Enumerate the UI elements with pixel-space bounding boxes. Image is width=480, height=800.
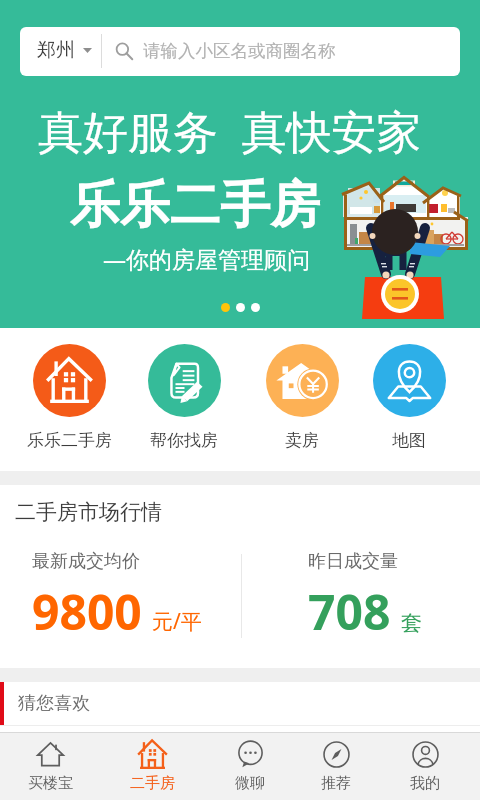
staticText: 二手房市场行情 xyxy=(15,499,162,525)
button[interactable]: 地图 xyxy=(363,344,455,451)
staticText: 我的 xyxy=(410,774,440,793)
button[interactable]: 卖房 xyxy=(256,344,348,451)
staticText: 买楼宝 xyxy=(28,774,73,793)
staticText: 昨日成交量 xyxy=(308,550,398,573)
button[interactable]: 猜您喜欢 xyxy=(0,682,480,725)
staticText: 乐乐二手房 xyxy=(27,430,112,451)
button[interactable]: 郑州 xyxy=(20,27,460,76)
staticText: 推荐 xyxy=(321,774,351,793)
staticText: 卖房 xyxy=(285,430,319,451)
staticText: 真好服务 真快安家 xyxy=(38,100,422,161)
staticText: 708 xyxy=(308,579,391,644)
button[interactable]: 买楼宝 xyxy=(6,732,94,793)
button[interactable]: 乐乐二手房 xyxy=(23,344,115,451)
button[interactable]: 推荐 xyxy=(292,732,380,793)
staticText: 乐乐二手房 xyxy=(70,174,320,237)
staticText: 微聊 xyxy=(235,774,265,793)
button[interactable]: 我的 xyxy=(381,732,469,793)
staticText: —你的房屋管理顾问 xyxy=(103,243,310,274)
staticText: 地图 xyxy=(392,430,426,451)
staticText: 二手房 xyxy=(130,774,175,793)
staticText: 最新成交均价 xyxy=(32,550,140,573)
staticText: 元/平 xyxy=(152,607,202,636)
staticText: 猜您喜欢 xyxy=(18,692,90,715)
staticText: 帮你找房 xyxy=(150,430,218,451)
button[interactable]: 二手房 xyxy=(108,732,196,793)
staticText: 郑州 xyxy=(37,38,75,62)
staticText: 套 xyxy=(401,610,422,636)
button[interactable]: 帮你找房 xyxy=(138,344,230,451)
staticText: 9800 xyxy=(32,579,142,644)
staticText: 请输入小区名或商圈名称 xyxy=(143,40,336,62)
button[interactable]: 微聊 xyxy=(206,732,294,793)
